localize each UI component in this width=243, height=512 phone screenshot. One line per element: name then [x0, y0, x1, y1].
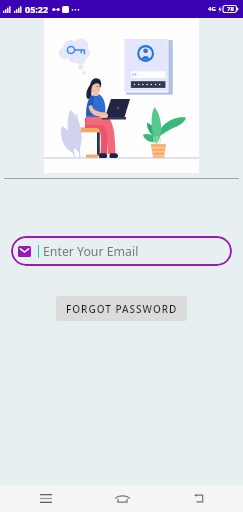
button[interactable]: Back [160, 485, 236, 512]
button[interactable]: Recent apps [7, 485, 84, 512]
button[interactable]: FORGOT PASSWORD [56, 296, 187, 321]
button[interactable]: Enter Your Email [11, 236, 232, 266]
staticText: Enter Your Email [43, 243, 139, 260]
staticText: 4G [208, 5, 216, 13]
button[interactable]: Home [84, 485, 160, 512]
staticText: 05:22 [25, 3, 49, 15]
staticText: 78 [227, 5, 234, 13]
staticText: FORGOT PASSWORD [66, 302, 178, 316]
